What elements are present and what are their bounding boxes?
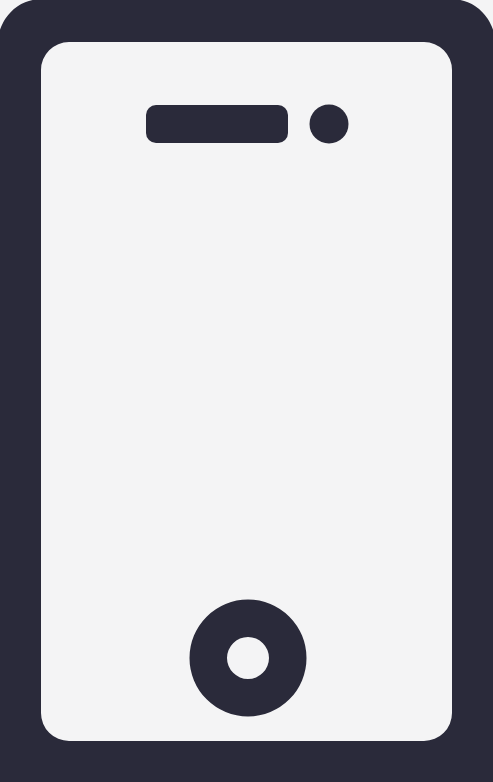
button[interactable]: Mobile phone device	[0, 0, 493, 782]
